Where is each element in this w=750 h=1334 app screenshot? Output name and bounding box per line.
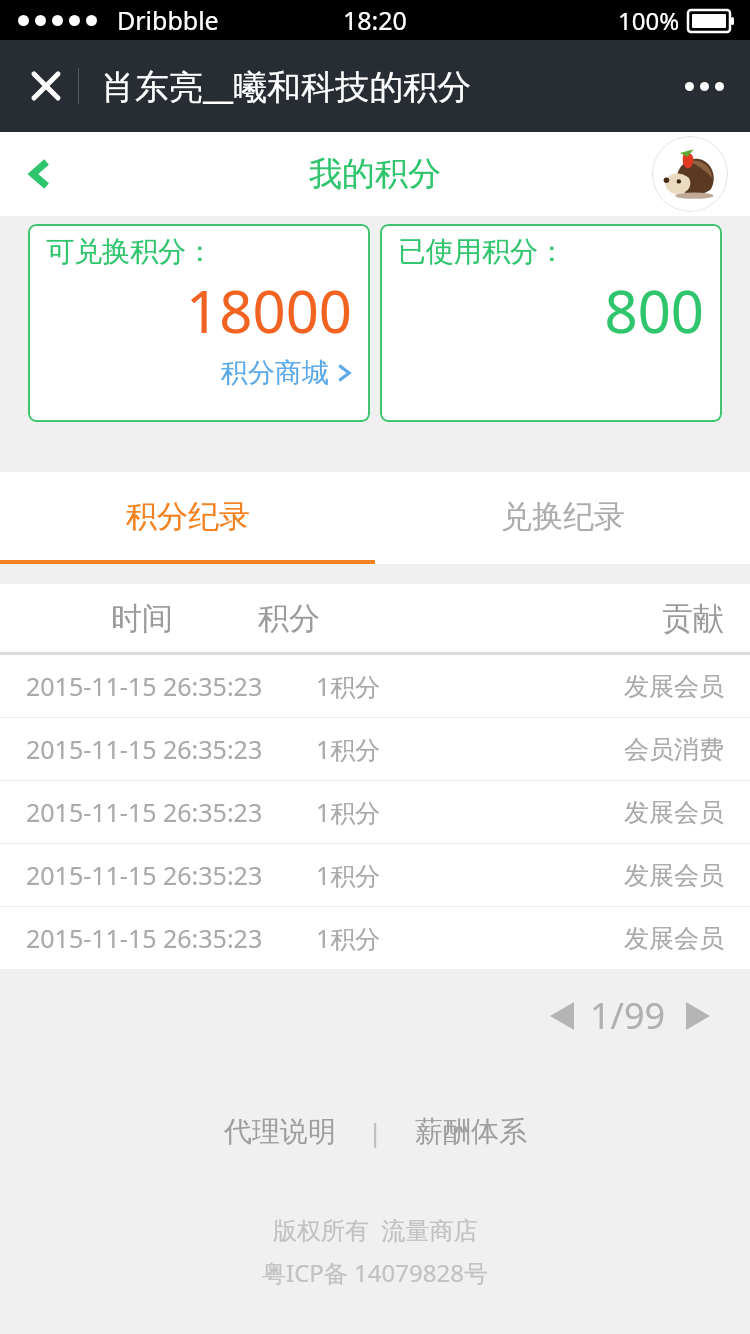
staticText: 2015-11-15 26:35:23	[26, 795, 316, 829]
button[interactable]: 积分商城	[221, 356, 352, 390]
staticText: 18000	[46, 271, 352, 350]
staticText: 粤ICP备 14079828号	[262, 1256, 488, 1289]
staticText: 1积分	[316, 669, 531, 703]
staticText: 发展会员	[531, 923, 724, 954]
staticText: 会员消费	[531, 734, 724, 765]
button[interactable]: Close	[22, 62, 70, 110]
staticText: 发展会员	[531, 671, 724, 702]
staticText: 发展会员	[531, 860, 724, 891]
button[interactable]: 代理说明	[218, 1110, 342, 1153]
staticText: 积分商城	[221, 356, 329, 390]
staticText: 1积分	[316, 795, 531, 829]
button[interactable]: 2015-11-15 26:35:23	[0, 844, 750, 906]
staticText: 800	[398, 271, 704, 350]
staticText: 积分纪录	[126, 497, 250, 536]
staticText: 时间	[26, 599, 258, 638]
staticText: 100%	[618, 4, 680, 37]
button[interactable]: 2015-11-15 26:35:23	[0, 718, 750, 780]
staticText: 兑换纪录	[501, 497, 625, 536]
button[interactable]: Next page	[676, 994, 720, 1038]
button[interactable]: 兑换纪录	[375, 472, 750, 560]
button[interactable]: Back	[12, 146, 68, 202]
button[interactable]: 已使用积分：	[380, 224, 722, 422]
staticText: 版权所有 流量商店	[273, 1213, 478, 1246]
staticText: 2015-11-15 26:35:23	[26, 858, 316, 892]
button[interactable]: 2015-11-15 26:35:23	[0, 781, 750, 843]
button[interactable]: More options	[676, 58, 732, 114]
button[interactable]: 2015-11-15 26:35:23	[0, 907, 750, 969]
staticText: |	[368, 1114, 383, 1149]
staticText: 18:20	[343, 3, 407, 37]
staticText: 2015-11-15 26:35:23	[26, 921, 316, 955]
staticText: 1/99	[590, 991, 666, 1040]
staticText: 1积分	[316, 921, 531, 955]
staticText: 2015-11-15 26:35:23	[26, 669, 316, 703]
staticText: 薪酬体系	[415, 1114, 527, 1149]
staticText: 1积分	[316, 858, 531, 892]
button[interactable]: 2015-11-15 26:35:23	[0, 655, 750, 717]
staticText: 发展会员	[531, 797, 724, 828]
staticText: 积分	[258, 599, 491, 638]
button[interactable]: 可兑换积分：	[28, 224, 370, 422]
button[interactable]: 薪酬体系	[409, 1110, 533, 1153]
staticText: 我的积分	[309, 153, 441, 195]
staticText: 贡献	[491, 599, 724, 638]
staticText: 1积分	[316, 732, 531, 766]
staticText: 2015-11-15 26:35:23	[26, 732, 316, 766]
staticText: 已使用积分：	[398, 234, 566, 269]
button[interactable]: Previous page	[540, 994, 584, 1038]
staticText: 代理说明	[224, 1114, 336, 1149]
button[interactable]: Profile avatar	[652, 136, 728, 212]
staticText: 肖东亮__曦和科技的积分	[101, 63, 472, 109]
staticText: Dribbble	[117, 3, 219, 37]
button[interactable]: 积分纪录	[0, 472, 375, 560]
staticText: 可兑换积分：	[46, 234, 214, 269]
